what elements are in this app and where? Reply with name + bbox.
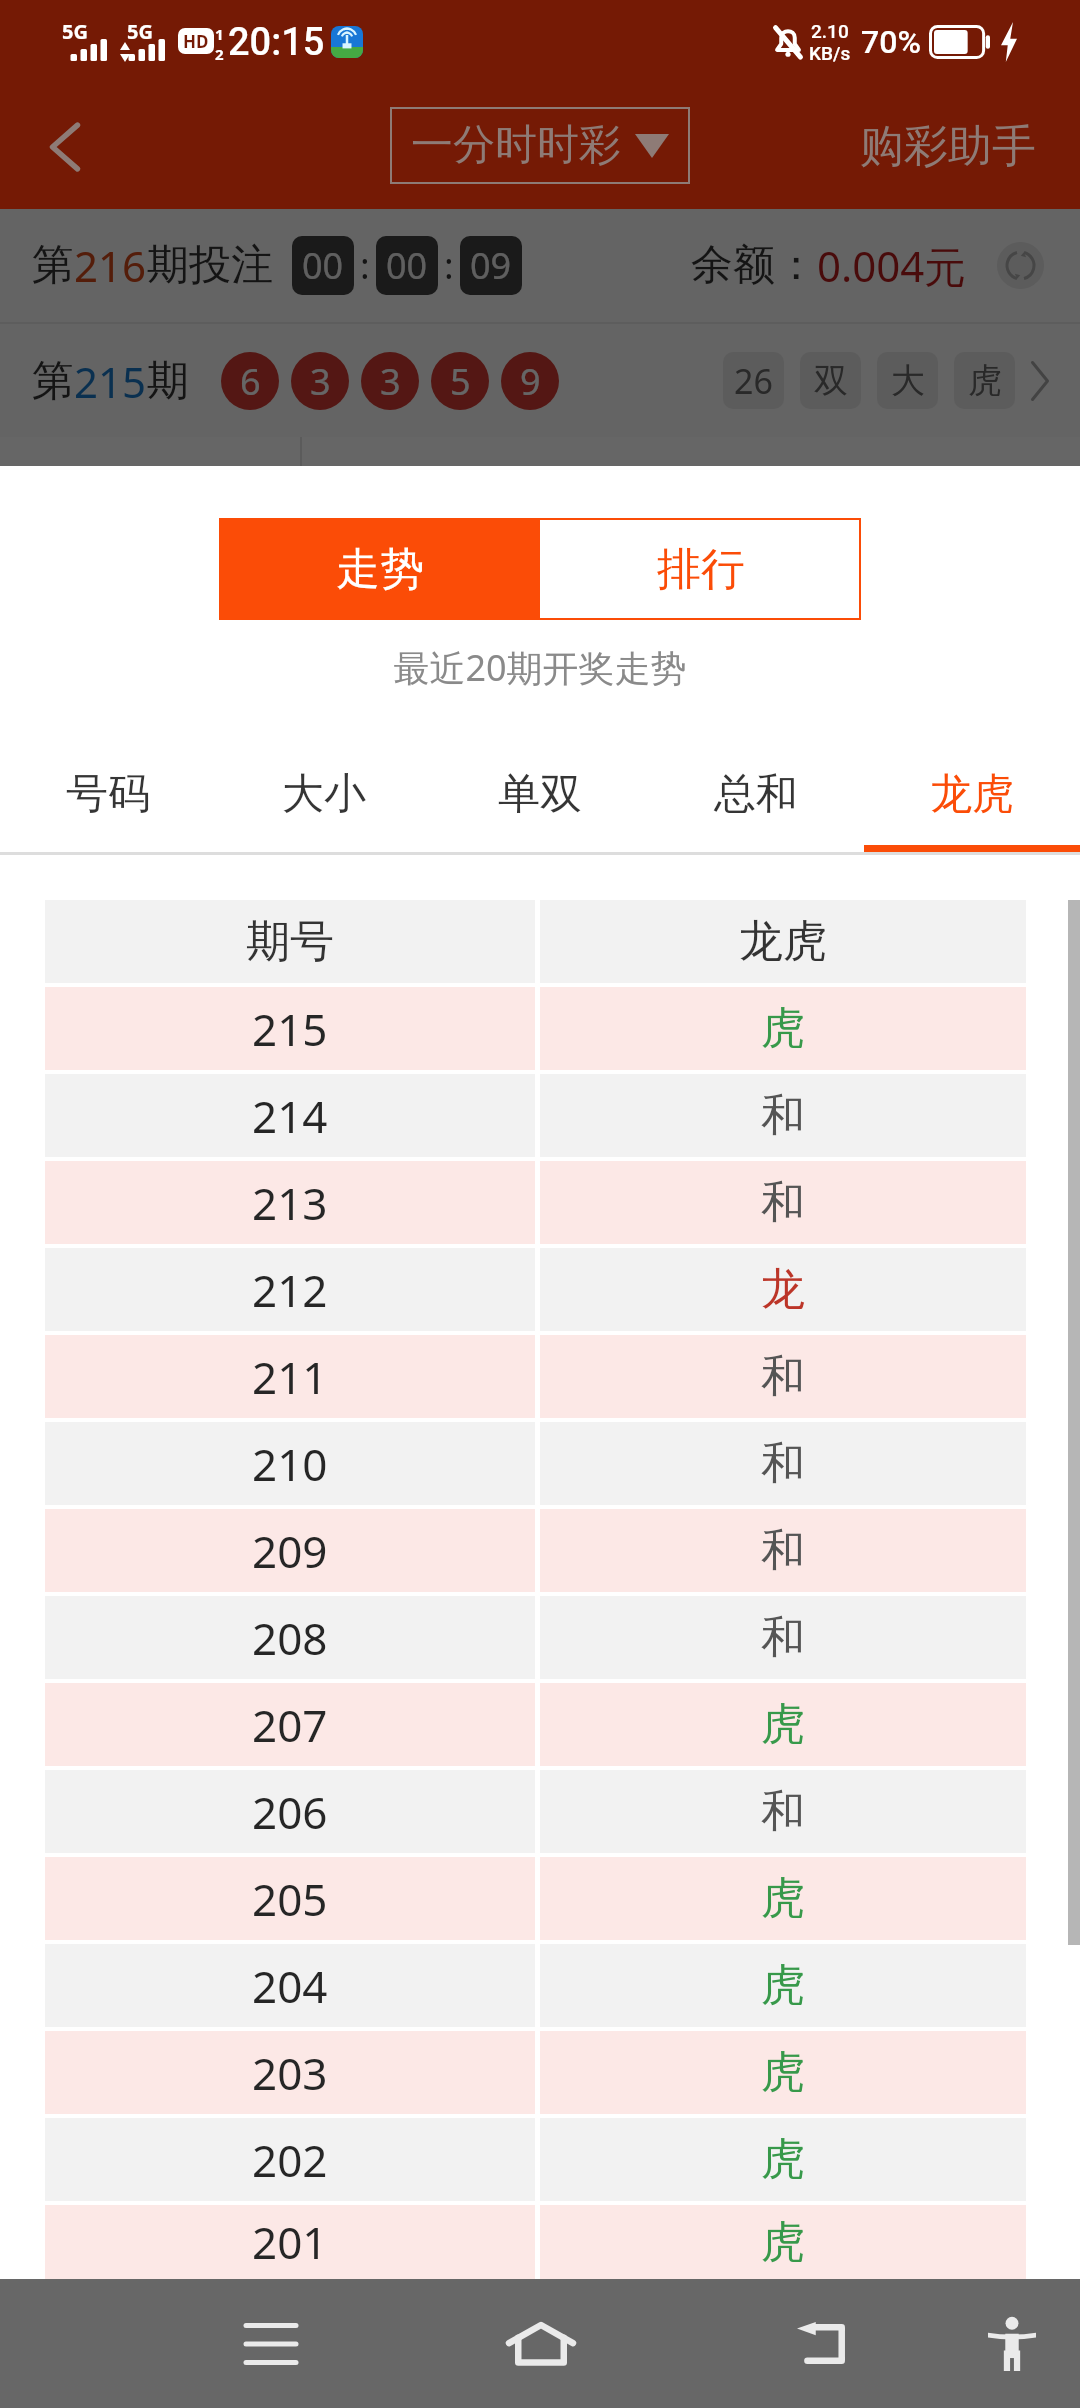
button[interactable]: 排行: [540, 518, 861, 620]
staticText: 202: [252, 2130, 328, 2190]
staticText: 0.004元: [817, 237, 967, 294]
staticText: 2.10: [811, 20, 849, 42]
button[interactable]: Refresh: [997, 242, 1044, 289]
button[interactable]: Back: [26, 108, 104, 186]
staticText: 虎: [761, 2045, 805, 2100]
button[interactable]: Accessibility: [952, 2289, 1072, 2399]
staticText: 215: [252, 999, 328, 1059]
staticText: 209: [252, 1521, 328, 1581]
staticText: 3: [380, 357, 401, 406]
button[interactable]: 购彩助手: [860, 119, 1080, 174]
staticText: 和: [761, 1523, 805, 1578]
staticText: 第: [32, 239, 74, 292]
button[interactable]: 号码: [0, 751, 216, 852]
staticText: 和: [761, 1436, 805, 1491]
staticText: 211: [252, 1347, 328, 1407]
staticText: 期投注: [147, 239, 273, 292]
staticText: 余额：: [691, 239, 817, 292]
staticText: 大小: [282, 768, 366, 821]
staticText: 虎: [761, 2215, 805, 2270]
staticText: 210: [252, 1434, 328, 1494]
staticText: 龙虎: [739, 914, 827, 969]
button[interactable]: Back: [763, 2289, 883, 2399]
staticText: 虎: [761, 1871, 805, 1926]
staticText: 最近20期开奖走势: [0, 643, 1080, 692]
staticText: 第: [32, 355, 74, 408]
staticText: 70%: [861, 23, 921, 61]
staticText: 26: [734, 358, 773, 404]
staticText: 208: [252, 1608, 328, 1668]
staticText: 6: [240, 357, 261, 406]
button[interactable]: Home: [481, 2289, 601, 2399]
staticText: 00: [386, 241, 428, 290]
staticText: 206: [252, 1782, 328, 1842]
staticText: 1: [215, 24, 224, 44]
staticText: 走势: [336, 542, 424, 597]
staticText: 5G: [62, 18, 88, 45]
staticText: 一分时时彩: [411, 119, 621, 172]
button[interactable]: 一分时时彩: [390, 107, 690, 184]
staticText: 总和: [714, 768, 798, 821]
button[interactable]: 总和: [648, 751, 864, 852]
staticText: 20:15: [228, 20, 325, 65]
staticText: 和: [761, 1784, 805, 1839]
staticText: 214: [252, 1086, 328, 1146]
staticText: 和: [761, 1175, 805, 1230]
staticText: 3: [310, 357, 331, 406]
staticText: 龙虎: [930, 768, 1014, 821]
staticText: 00: [302, 241, 344, 290]
staticText: 虎: [761, 1001, 805, 1056]
staticText: 5G: [127, 18, 153, 45]
staticText: 购彩助手: [860, 119, 1036, 174]
staticText: 09: [470, 241, 512, 290]
staticText: 203: [252, 2043, 328, 2103]
staticText: 213: [252, 1173, 328, 1233]
button[interactable]: Recent apps: [211, 2289, 331, 2399]
staticText: 9: [520, 357, 541, 406]
staticText: 大: [891, 359, 925, 402]
staticText: 204: [252, 1956, 328, 2016]
staticText: 2: [215, 44, 224, 64]
staticText: 和: [761, 1610, 805, 1665]
staticText: :: [360, 241, 370, 290]
staticText: 单双: [498, 768, 582, 821]
staticText: 和: [761, 1349, 805, 1404]
staticText: 201: [252, 2212, 328, 2272]
staticText: HD: [183, 30, 209, 53]
staticText: 205: [252, 1869, 328, 1929]
staticText: 和: [761, 1088, 805, 1143]
staticText: :: [444, 241, 454, 290]
staticText: 5: [450, 357, 471, 406]
button[interactable]: 单双: [432, 751, 648, 852]
staticText: 虎: [761, 1958, 805, 2013]
staticText: KB/s: [809, 42, 851, 64]
staticText: 期: [147, 355, 189, 408]
button[interactable]: 走势: [219, 518, 540, 620]
button[interactable]: 龙虎: [864, 751, 1080, 852]
staticText: 216: [74, 237, 147, 294]
staticText: 212: [252, 1260, 328, 1320]
staticText: 期号: [246, 914, 334, 969]
button[interactable]: 大小: [216, 751, 432, 852]
staticText: 双: [814, 359, 848, 402]
staticText: 号码: [66, 768, 150, 821]
staticText: 虎: [761, 1697, 805, 1752]
staticText: 虎: [968, 359, 1002, 402]
staticText: 215: [74, 353, 147, 410]
staticText: 龙: [761, 1262, 805, 1317]
staticText: 虎: [761, 2132, 805, 2187]
staticText: 207: [252, 1695, 328, 1755]
staticText: 排行: [657, 542, 745, 597]
